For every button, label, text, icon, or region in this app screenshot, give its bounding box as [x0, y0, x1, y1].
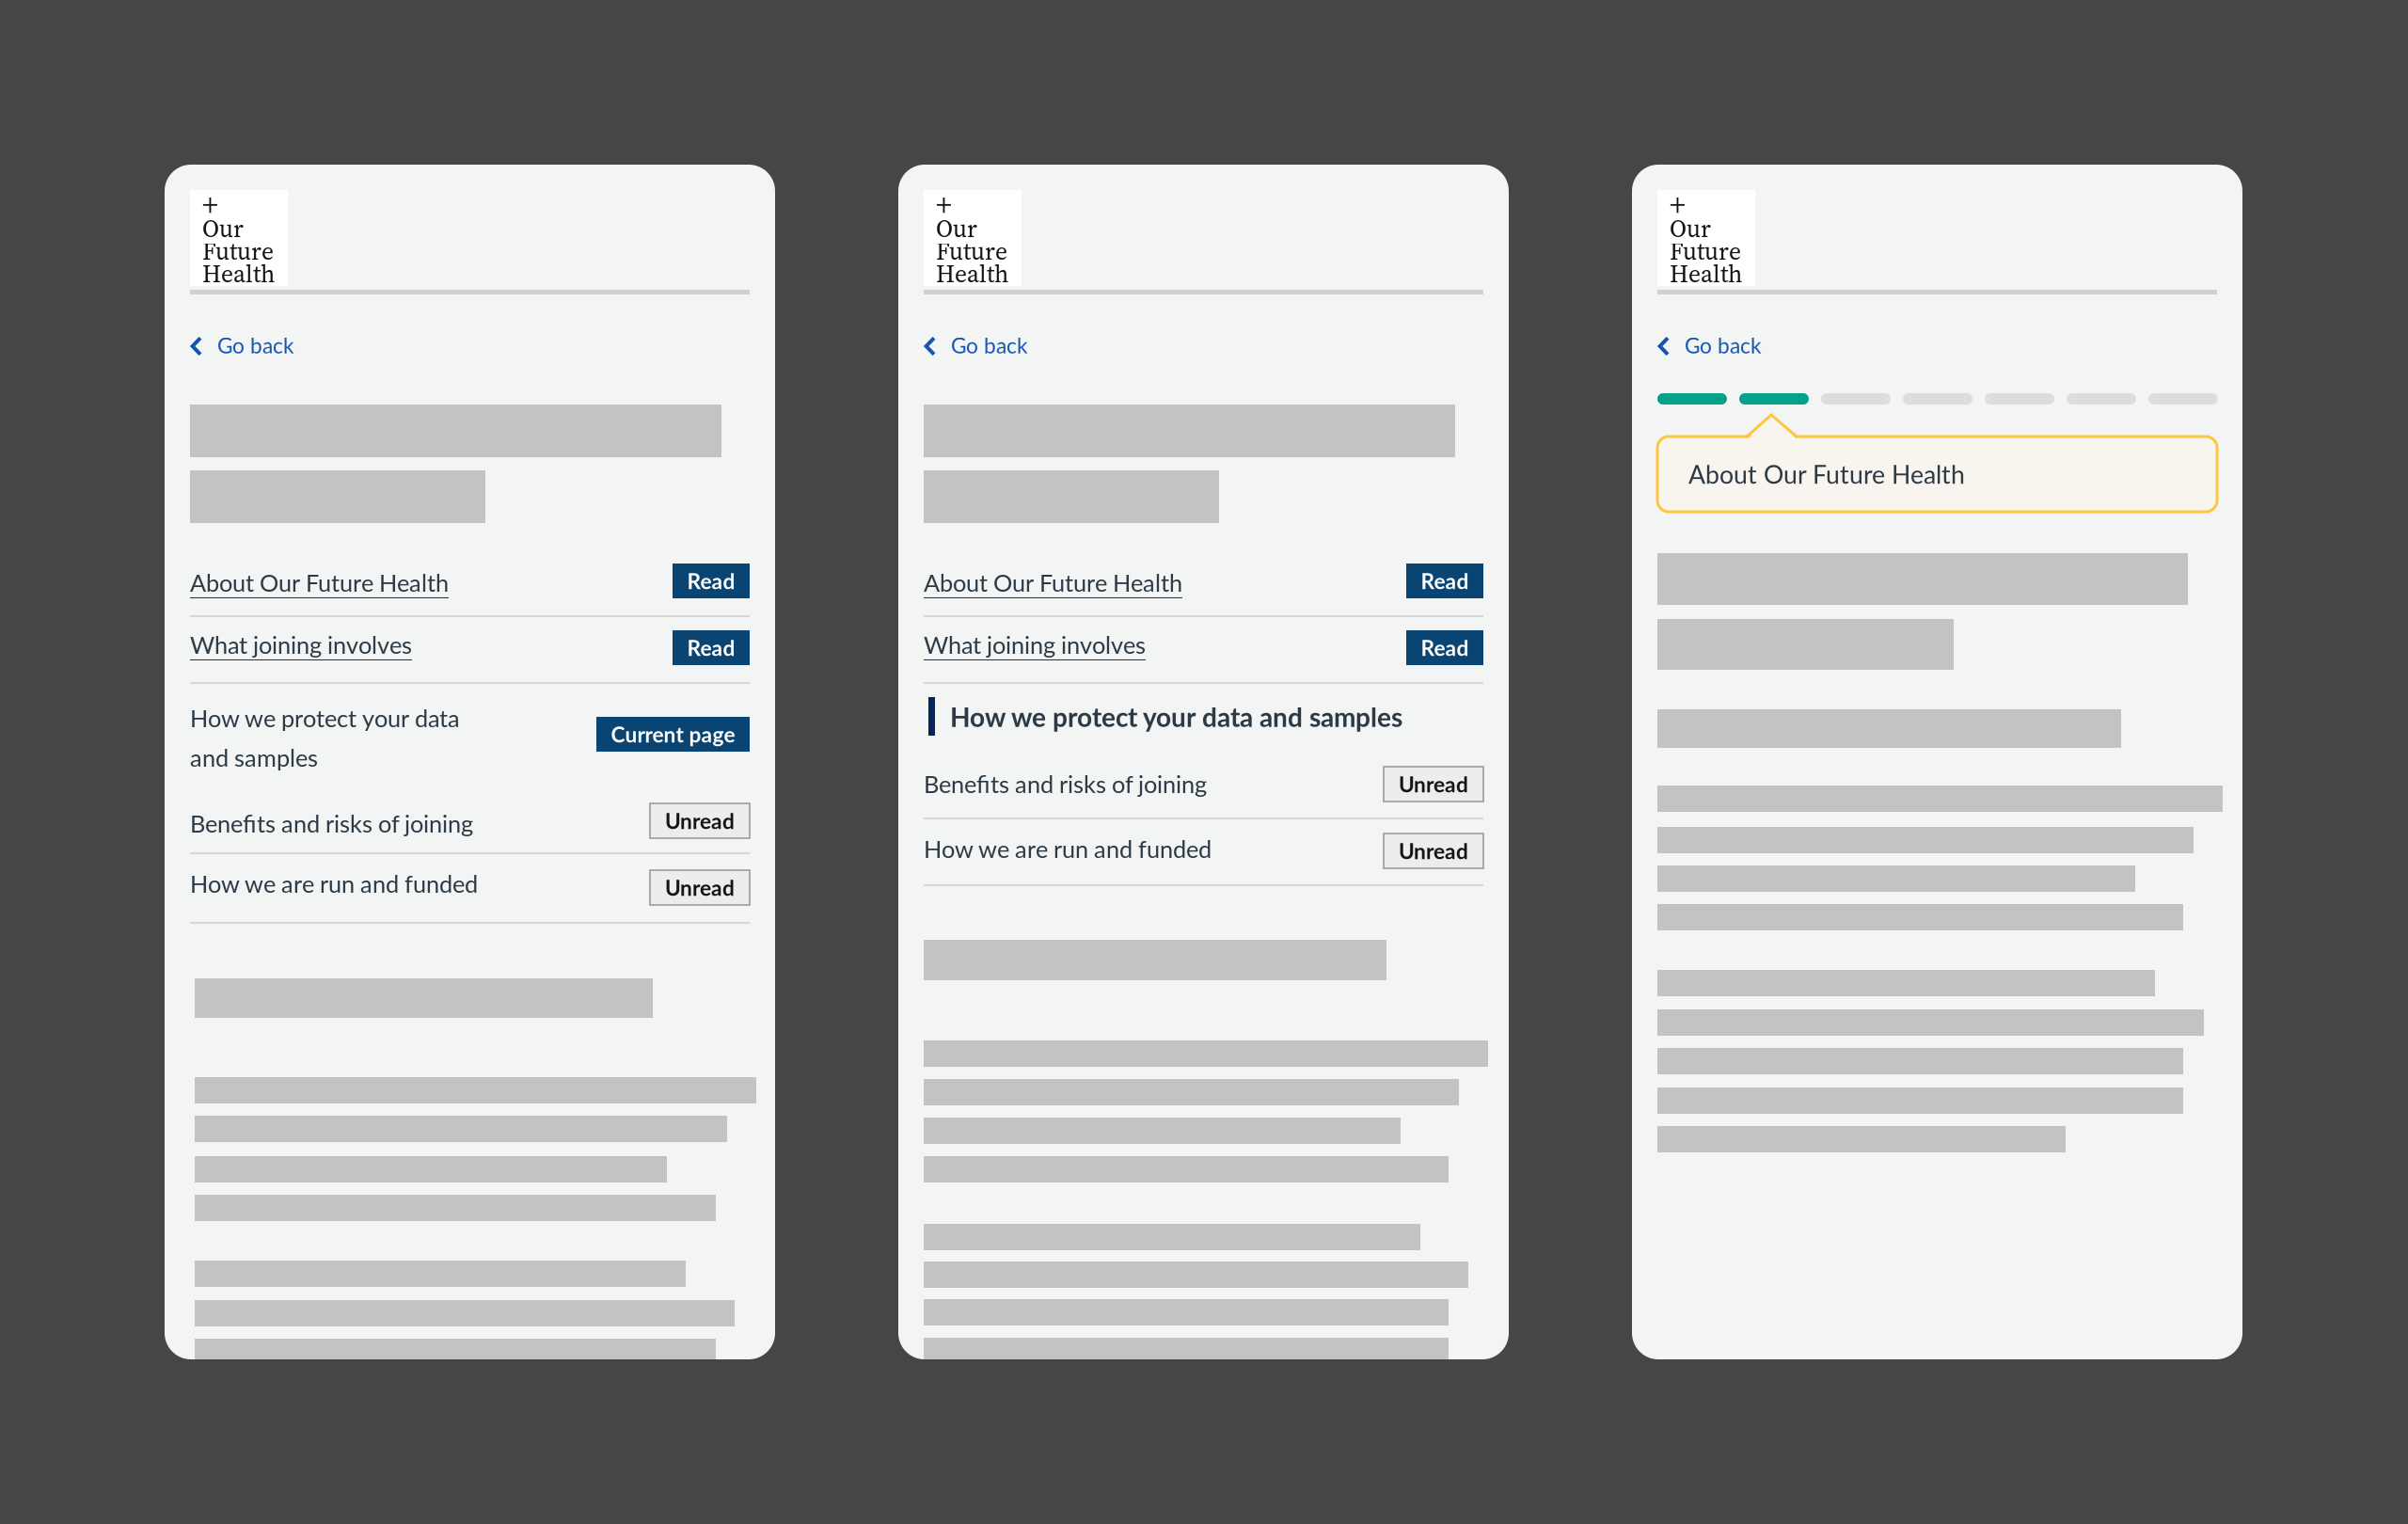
- staticText: Future: [936, 235, 1007, 267]
- staticText: About Our Future Health: [190, 568, 449, 597]
- button[interactable]: Go back: [1657, 332, 1798, 360]
- staticText: +: [1670, 184, 1686, 225]
- staticText: Read: [1421, 635, 1469, 660]
- button[interactable]: How we protect your data: [190, 688, 750, 791]
- button[interactable]: Go back: [190, 332, 331, 360]
- staticText: +: [936, 184, 952, 225]
- staticText: How we are run and funded: [190, 869, 478, 898]
- staticText: Our: [202, 212, 244, 245]
- button[interactable]: Benefits and risks of joining: [924, 757, 1483, 814]
- staticText: Benefits and risks of joining: [924, 770, 1207, 798]
- button[interactable]: About Our Future Health: [924, 557, 1483, 615]
- staticText: Health: [202, 257, 275, 290]
- staticText: How we protect your data: [190, 704, 460, 732]
- staticText: Unread: [665, 808, 735, 834]
- staticText: Benefits and risks of joining: [190, 809, 473, 838]
- staticText: About Our Future Health: [924, 568, 1182, 597]
- staticText: and samples: [190, 743, 318, 772]
- button[interactable]: How we are run and funded: [924, 823, 1483, 881]
- staticText: Go back: [217, 332, 294, 358]
- staticText: +: [202, 184, 218, 225]
- staticText: Read: [687, 635, 735, 660]
- staticText: Future: [1670, 235, 1741, 267]
- staticText: Go back: [951, 332, 1028, 358]
- staticText: Read: [687, 568, 735, 594]
- staticText: Health: [936, 257, 1008, 290]
- staticText: Read: [1421, 568, 1469, 594]
- staticText: Health: [1670, 257, 1742, 290]
- staticText: Unread: [665, 875, 735, 900]
- staticText: What joining involves: [190, 630, 412, 659]
- staticText: What joining involves: [924, 630, 1146, 659]
- staticText: How we are run and funded: [924, 834, 1212, 863]
- button[interactable]: How we are run and funded: [190, 857, 750, 921]
- staticText: Future: [202, 235, 274, 267]
- staticText: Current page: [611, 721, 735, 747]
- staticText: Unread: [1399, 771, 1468, 797]
- button[interactable]: What joining involves: [190, 619, 750, 681]
- button[interactable]: What joining involves: [924, 619, 1483, 681]
- staticText: Unread: [1399, 838, 1468, 864]
- staticText: Go back: [1685, 332, 1762, 358]
- staticText: How we protect your data and samples: [950, 701, 1402, 732]
- staticText: Our: [1670, 212, 1711, 245]
- button[interactable]: Benefits and risks of joining: [190, 795, 750, 851]
- staticText: About Our Future Health: [1688, 459, 1965, 489]
- button[interactable]: About Our Future Health: [190, 557, 750, 615]
- staticText: Our: [936, 212, 977, 245]
- button[interactable]: Go back: [924, 332, 1065, 360]
